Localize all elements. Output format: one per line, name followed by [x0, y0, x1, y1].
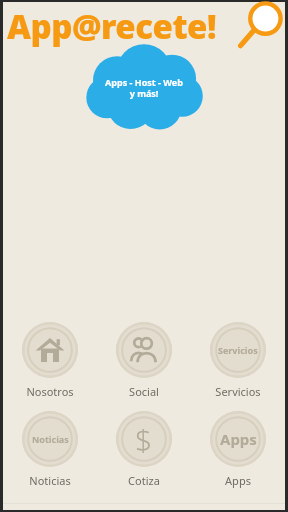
staticText: Servicios [218, 344, 258, 356]
staticText: Apps - Host - Web y más! [105, 76, 183, 99]
button[interactable]: $ [97, 409, 191, 490]
other: Search [236, 3, 282, 55]
staticText: $ [135, 419, 153, 460]
staticText: Cotiza [128, 473, 160, 488]
staticText: Social [129, 384, 159, 399]
button[interactable]: Noticias [3, 409, 97, 490]
staticText: App@recete! [7, 4, 217, 49]
staticText: Noticias [29, 473, 71, 488]
button[interactable]: Social [97, 320, 191, 401]
button[interactable]: Servicios [191, 320, 285, 401]
staticText: Nosotros [26, 384, 74, 399]
staticText: Noticias [32, 433, 69, 445]
staticText: Apps [220, 429, 257, 449]
staticText: Apps [225, 473, 251, 488]
button[interactable]: Nosotros [3, 320, 97, 401]
button[interactable]: Apps [191, 409, 285, 490]
staticText: Servicios [215, 384, 261, 399]
